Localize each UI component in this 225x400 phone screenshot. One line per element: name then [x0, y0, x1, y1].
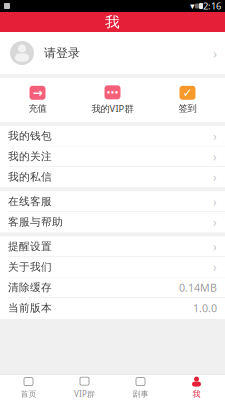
staticText: 请登录: [44, 46, 80, 60]
staticText: 客服与帮助: [8, 215, 63, 228]
staticText: 0.14MB: [179, 280, 217, 295]
button[interactable]: 请登录: [0, 32, 225, 74]
staticText: ›: [213, 259, 217, 275]
staticText: ›: [213, 214, 217, 230]
staticText: 签到: [178, 103, 196, 114]
button[interactable]: 剧事: [112, 375, 168, 400]
staticText: 提醒设置: [8, 240, 52, 253]
button[interactable]: 我的钱包: [0, 126, 225, 146]
staticText: 2:16: [203, 0, 221, 12]
button[interactable]: 在线客服: [0, 191, 225, 212]
button[interactable]: ✓: [150, 78, 225, 122]
button[interactable]: ⋯: [75, 78, 150, 122]
staticText: ▾: [190, 1, 195, 11]
button[interactable]: 我的关注: [0, 146, 225, 167]
button[interactable]: 客服与帮助: [0, 212, 225, 232]
staticText: 我的关注: [8, 150, 52, 163]
staticText: ›: [213, 238, 217, 254]
staticText: ⋯: [106, 85, 118, 99]
button[interactable]: 清除缓存: [0, 277, 225, 298]
staticText: 关于我们: [8, 260, 52, 273]
staticText: VIP群: [74, 389, 95, 399]
button[interactable]: VIP群: [56, 375, 112, 400]
staticText: 1.0.0: [193, 301, 217, 315]
button[interactable]: 我的私信: [0, 167, 225, 187]
button[interactable]: 关于我们: [0, 257, 225, 277]
button[interactable]: 提醒设置: [0, 236, 225, 257]
staticText: ›: [213, 169, 217, 185]
staticText: 我的VIP群: [91, 102, 133, 115]
staticText: ›: [213, 148, 217, 164]
staticText: ›: [213, 128, 217, 144]
staticText: ›: [213, 44, 217, 62]
staticText: →: [32, 86, 42, 100]
staticText: 我的私信: [8, 170, 52, 183]
button[interactable]: 首页: [0, 375, 56, 400]
staticText: 当前版本: [8, 301, 52, 314]
staticText: ›: [213, 193, 217, 209]
staticText: 充值: [28, 103, 46, 114]
staticText: 清除缓存: [8, 281, 52, 294]
staticText: 我: [105, 13, 120, 31]
staticText: 我: [192, 389, 200, 399]
staticText: 我的钱包: [8, 129, 52, 142]
button[interactable]: →: [0, 78, 75, 122]
staticText: 首页: [20, 389, 36, 399]
staticText: ✓: [182, 86, 192, 100]
staticText: 在线客服: [8, 195, 52, 208]
button[interactable]: 当前版本: [0, 298, 225, 318]
button[interactable]: 我: [168, 375, 224, 400]
staticText: 剧事: [132, 389, 148, 399]
